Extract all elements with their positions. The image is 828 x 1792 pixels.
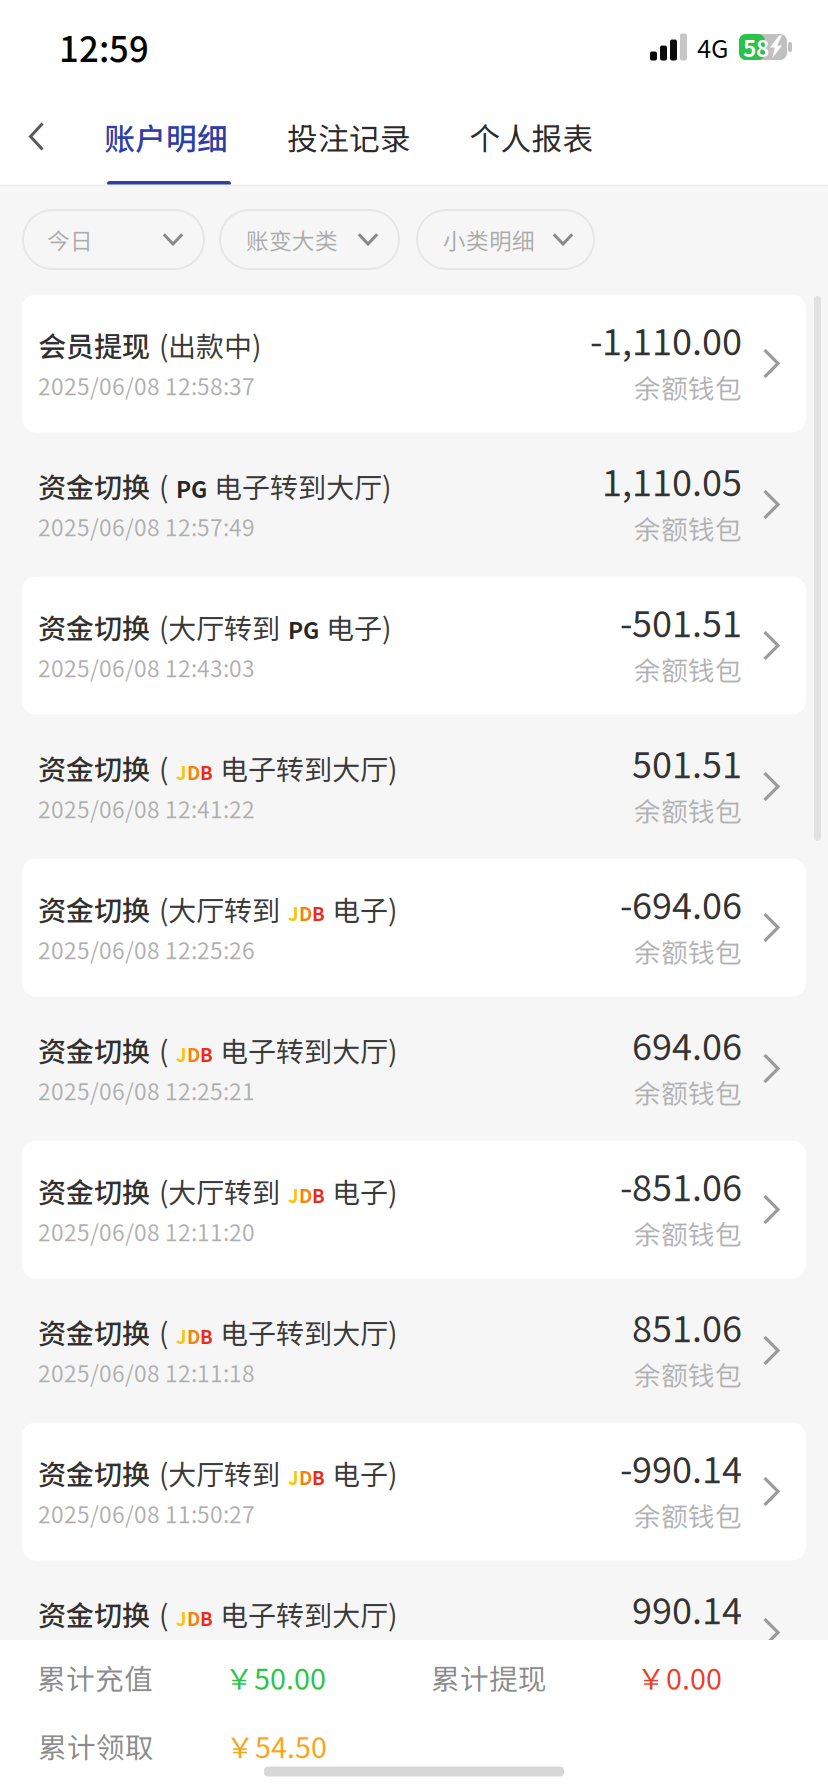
staticText: (大厅转到 [159,888,280,929]
staticText: 累计充值 [37,1656,153,1698]
staticText: 2025/06/08 12:11:20 [38,1215,255,1248]
staticText: J [176,1040,187,1067]
staticText: PG [288,613,319,645]
staticText: 2025/06/08 11:50:27 [38,1497,255,1530]
staticText: 电子转到大厅) [214,465,391,506]
button[interactable]: 会员提现 [0,293,828,434]
staticText: 2025/06/08 12:43:03 [38,651,255,684]
staticText: 余额钱包 [634,1355,742,1393]
staticText: 资金切换 [38,465,150,506]
staticText: D [299,1463,312,1490]
staticText: 资金切换 [38,1311,150,1352]
staticText: 资金切换 [38,1170,150,1211]
staticText: 余额钱包 [634,368,742,406]
button[interactable]: 资金切换 [0,1562,828,1703]
staticText: 余额钱包 [634,1073,742,1111]
staticText: PG [176,472,207,504]
staticText: 资金切换 [38,1029,150,1070]
staticText: -501.51 [620,595,742,648]
staticText: ( [159,1029,168,1070]
staticText: 小类明细 [443,223,535,256]
staticText: J [176,1322,187,1349]
staticText: 2025/06/08 12:41:22 [38,792,255,825]
staticText: D [299,899,312,926]
button[interactable]: 资金切换 [0,1421,828,1562]
button[interactable]: 资金切换 [0,575,828,716]
staticText: ( [159,1593,168,1634]
button[interactable]: 资金切换 [0,434,828,575]
staticText: 电子) [332,1170,397,1211]
staticText: B [312,1181,325,1208]
staticText: (大厅转到 [159,1452,280,1493]
staticText: ￥54.50 [226,1725,327,1766]
button[interactable]: 小类明细 [417,210,594,269]
staticText: 累计提现 [431,1656,547,1698]
staticText: 电子转到大厅) [220,1311,397,1352]
button[interactable]: Back [0,88,74,186]
staticText: 资金切换 [38,747,150,788]
staticText: 资金切换 [38,1452,150,1493]
staticText: D [187,1040,200,1067]
staticText: D [299,1181,312,1208]
staticText: (大厅转到 [159,606,280,647]
button[interactable]: 资金切换 [0,1139,828,1280]
staticText: 2025/06/08 12:57:49 [38,510,255,543]
staticText: 资金切换 [38,1593,150,1634]
button[interactable]: 资金切换 [0,716,828,857]
staticText: 余额钱包 [634,791,742,829]
staticText: 今日 [47,223,93,256]
staticText: J [288,1181,299,1208]
staticText: ( [159,1311,168,1352]
staticText: 投注记录 [287,115,411,159]
staticText: ( [159,747,168,788]
staticText: 余额钱包 [634,1496,742,1534]
staticText: 账户明细 [104,115,228,159]
staticText: (大厅转到 [159,1170,280,1211]
button[interactable]: 投注记录 [288,88,410,186]
staticText: -851.06 [620,1159,742,1212]
staticText: ￥0.00 [637,1656,722,1698]
staticText: 851.06 [632,1300,742,1353]
staticText: 电子) [332,888,397,929]
staticText: 个人报表 [469,115,593,159]
staticText: -694.06 [620,877,742,930]
staticText: 余额钱包 [634,1214,742,1252]
button[interactable]: 今日 [23,210,204,269]
staticText: 电子) [326,606,391,647]
staticText: B [200,1040,213,1067]
staticText: 1,110.05 [602,454,742,507]
staticText: 2025/06/08 12:11:18 [38,1356,255,1389]
staticText: B [312,899,325,926]
button[interactable]: 资金切换 [0,1280,828,1421]
staticText: 2025/06/08 12:25:21 [38,1074,255,1107]
staticText: ￥50.00 [225,1656,326,1698]
button[interactable]: 个人报表 [470,88,593,186]
staticText: B [200,1322,213,1349]
staticText: 会员提现 [38,324,150,365]
staticText: -990.14 [620,1441,742,1494]
staticText: B [200,1604,213,1631]
button[interactable]: 账户明细 [104,88,228,186]
staticText: 余额钱包 [634,932,742,970]
button[interactable]: 资金切换 [0,857,828,998]
button[interactable]: 账变大类 [220,210,399,269]
staticText: 资金切换 [38,888,150,929]
staticText: 2025/06/08 12:25:26 [38,933,255,966]
staticText: 余额钱包 [634,650,742,688]
staticText: 12:59 [59,22,149,72]
staticText: (出款中) [159,324,261,365]
staticText: 余额钱包 [634,509,742,547]
button[interactable]: 资金切换 [0,998,828,1139]
staticText: B [312,1463,325,1490]
staticText: 501.51 [632,736,742,789]
staticText: 电子转到大厅) [220,747,397,788]
staticText: 资金切换 [38,606,150,647]
staticText: 电子转到大厅) [220,1029,397,1070]
staticText: 58 [743,31,769,63]
staticText: ( [159,465,168,506]
staticText: D [187,1604,200,1631]
staticText: 电子) [332,1452,397,1493]
staticText: 余额钱包 [634,1637,742,1675]
staticText: J [288,899,299,926]
staticText: J [176,1604,187,1631]
